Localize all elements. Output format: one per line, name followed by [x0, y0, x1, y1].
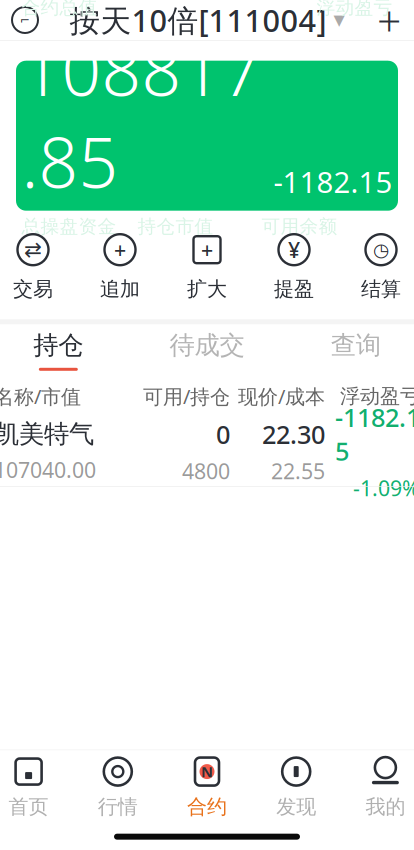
button[interactable]: 合约总值	[16, 61, 398, 211]
staticText: 合约总值	[21, 0, 97, 19]
button[interactable]: 发现	[252, 756, 341, 818]
button[interactable]: 添加	[362, 0, 414, 42]
staticText: 按天10倍[111004]	[69, 0, 326, 40]
staticText: 凯美特气	[0, 418, 94, 450]
staticText: 浮动盈亏	[340, 384, 414, 409]
staticText: 总操盘资金	[21, 215, 116, 238]
staticText: ◷	[373, 239, 389, 260]
staticText: 提盈	[274, 277, 314, 301]
staticText: 待成交	[169, 330, 244, 361]
staticText: 22.55	[271, 457, 325, 485]
staticText: ¥	[288, 235, 300, 264]
staticText: 结算	[361, 277, 401, 301]
staticText: 110000	[21, 243, 93, 271]
staticText: 22.30	[262, 417, 325, 451]
staticText: +	[201, 235, 213, 264]
staticText: 交易	[13, 277, 53, 301]
staticText: 查询	[331, 330, 381, 361]
staticText: ⌐	[20, 13, 30, 27]
staticText: 0	[216, 417, 230, 451]
staticText: 名称/市值	[0, 383, 81, 410]
button[interactable]: 持仓	[0, 324, 133, 376]
staticText: ▼	[333, 12, 344, 28]
button[interactable]: 凯美特气	[0, 416, 414, 486]
staticText: 发现	[276, 795, 316, 819]
staticText: -1.09%	[353, 474, 414, 502]
button[interactable]: 行情	[73, 756, 162, 818]
button[interactable]: 待成交	[133, 324, 281, 376]
button[interactable]: 查询	[281, 324, 414, 376]
staticText: 现价/成本	[238, 383, 325, 410]
staticText: 107040.00	[137, 243, 239, 271]
button[interactable]: 我的	[341, 756, 414, 818]
button[interactable]: 按天10倍[111004]	[69, 0, 344, 42]
button[interactable]: 历史记录	[0, 0, 52, 42]
staticText: 我的	[365, 795, 405, 819]
staticText: +	[114, 235, 126, 264]
staticText: 107040.00	[0, 456, 96, 484]
staticText: 4800	[182, 457, 230, 485]
staticText: 首页	[9, 795, 49, 819]
staticText: 合约	[187, 795, 227, 819]
staticText: -1182.15	[273, 162, 392, 201]
button[interactable]: +	[83, 233, 157, 301]
staticText: 1777.85	[261, 243, 339, 271]
button[interactable]: ◷	[344, 233, 414, 301]
staticText: 持仓市值	[137, 215, 213, 238]
staticText: -1182.15	[335, 400, 414, 468]
button[interactable]: ¥	[257, 233, 331, 301]
staticText: >	[379, 229, 392, 259]
staticText: 可用/持仓	[143, 383, 230, 410]
staticText: 浮动盈亏	[316, 0, 392, 19]
staticText: N	[201, 762, 213, 781]
staticText: +	[377, 0, 401, 48]
staticText: 追加	[100, 277, 140, 301]
button[interactable]: N	[162, 756, 252, 818]
staticText: 扩大	[187, 277, 227, 301]
staticText: 可用余额	[261, 215, 337, 238]
staticText: 108817.85	[21, 23, 261, 207]
staticText: 行情	[98, 795, 138, 819]
staticText: 持仓	[33, 330, 83, 361]
button[interactable]: ⇄	[0, 233, 70, 301]
button[interactable]: +	[170, 233, 244, 301]
button[interactable]: 首页	[0, 756, 73, 818]
staticText: ⇄	[24, 238, 42, 262]
